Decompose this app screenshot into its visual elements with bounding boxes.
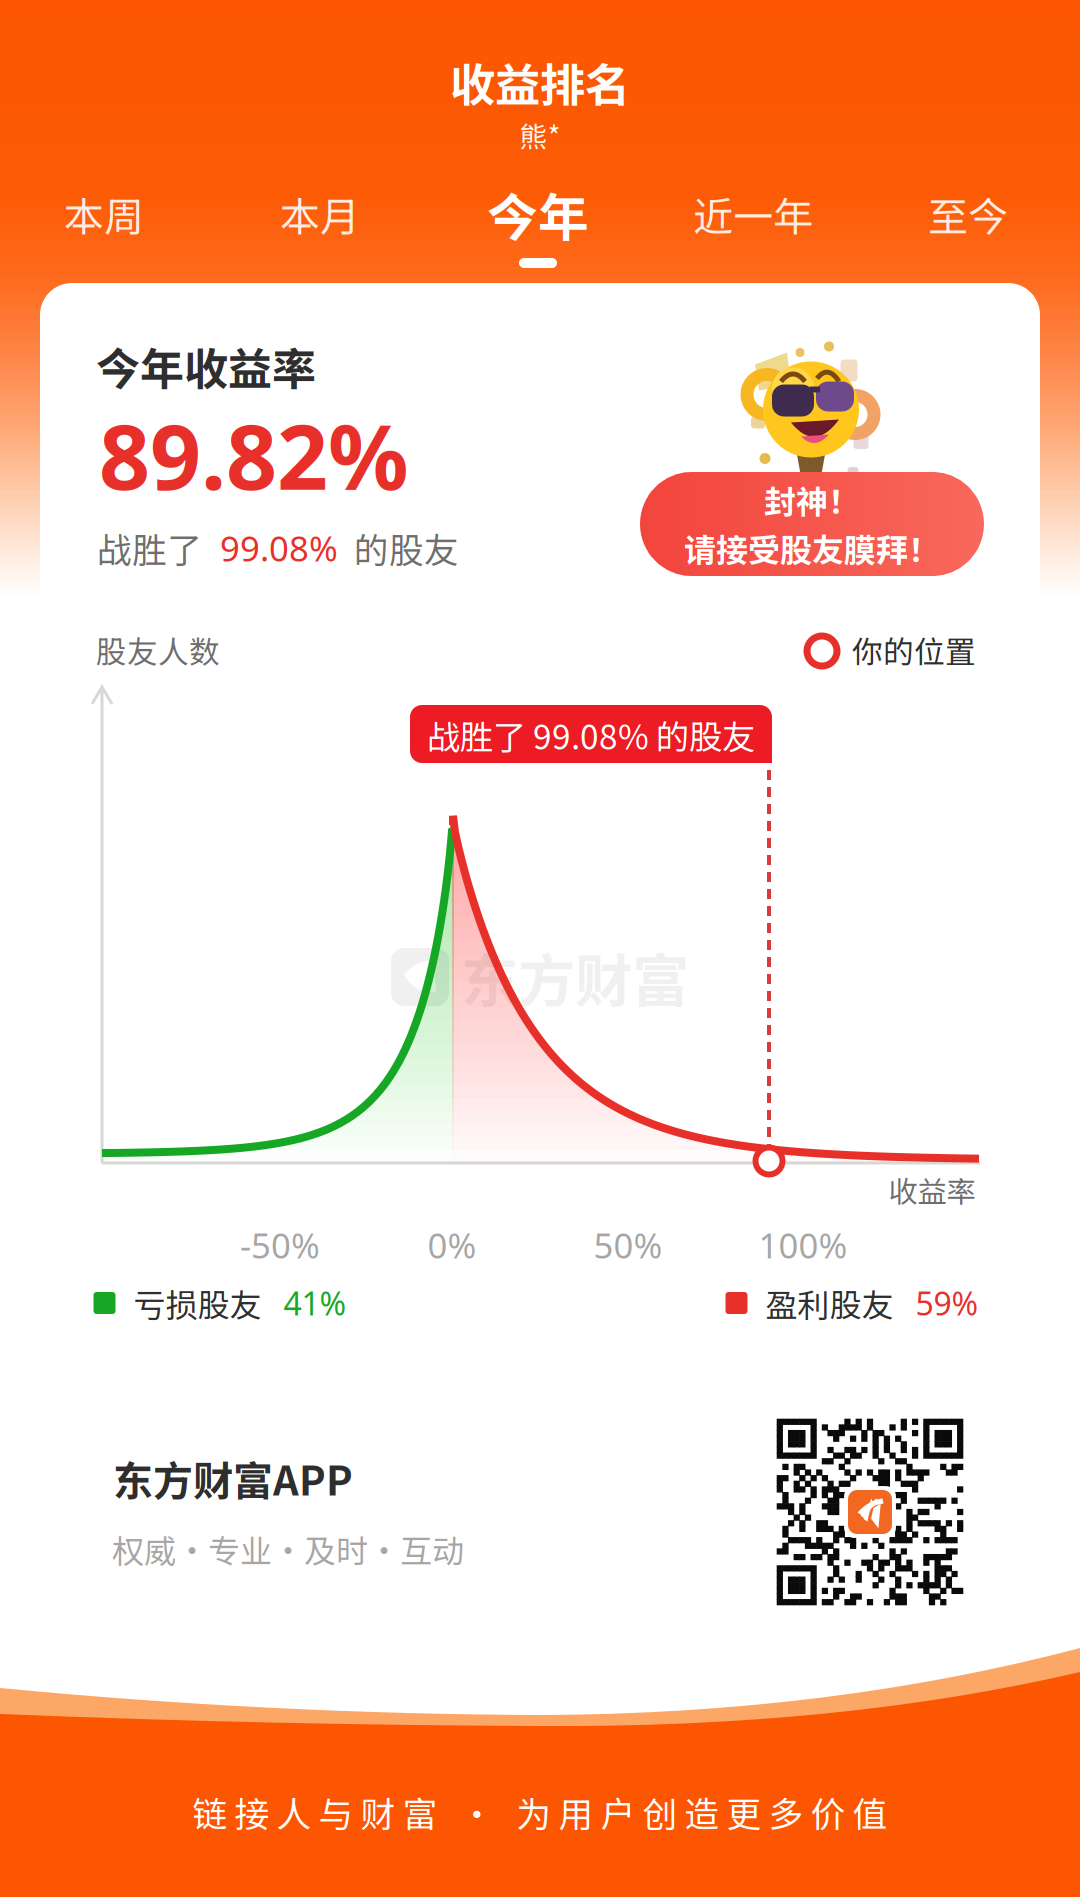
staticText: 0% [427,1221,476,1269]
staticText: 你的位置 [852,628,976,672]
staticText: 请接受股友膜拜！ [684,525,940,571]
staticText: 41% [283,1281,346,1325]
staticText: 股友人数 [96,628,220,672]
staticText: 近一年 [693,185,813,243]
staticText: 盈利股友 [765,1280,893,1326]
staticText: 50% [593,1221,662,1269]
staticText: 本月 [280,185,360,243]
staticText: 熊* [519,115,560,155]
staticText: 至今 [928,185,1008,243]
staticText: 100% [758,1221,847,1269]
staticText: 东方财富 [461,935,689,1018]
button[interactable]: 今年 [440,160,636,270]
staticText: 战胜了 [97,523,202,573]
staticText: 收益排名 [450,49,630,115]
button[interactable]: 本月 [222,160,418,270]
button[interactable]: 至今 [870,160,1066,270]
staticText: 今年 [487,177,589,251]
staticText: 今年收益率 [96,334,316,398]
staticText: 东方财富APP [113,1449,353,1507]
staticText: 99.08% [220,524,338,572]
button[interactable]: 近一年 [655,160,851,270]
staticText: -50% [240,1221,320,1269]
staticText: 亏损股友 [133,1280,261,1326]
staticText: 本周 [64,185,144,243]
staticText: 59% [915,1281,978,1325]
staticText: 的股友 [354,523,459,573]
staticText: 收益率 [888,1169,975,1211]
staticText: 89.82% [99,394,409,516]
staticText: 链接人与财富 · 为用户创造更多价值 [192,1787,887,1837]
staticText: 权威·专业·及时·互动 [112,1526,464,1572]
staticText: 封神！ [764,477,860,523]
button[interactable]: 本周 [6,160,202,270]
staticText: 战胜了 99.08% 的股友 [427,711,755,759]
